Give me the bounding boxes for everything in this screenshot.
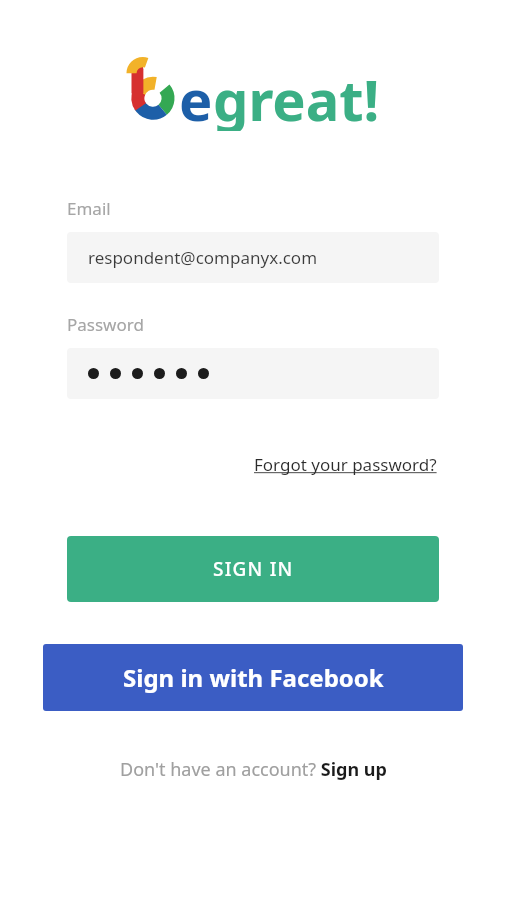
staticText: respondent@companyx.com bbox=[88, 246, 318, 269]
staticText: Don't have an account? Sign up bbox=[120, 757, 387, 782]
staticText: great! bbox=[213, 61, 380, 131]
button[interactable]: Sign in with Facebook bbox=[43, 644, 463, 711]
button[interactable]: respondent@companyx.com bbox=[67, 232, 439, 283]
staticText: SIGN IN bbox=[213, 556, 294, 582]
button[interactable]: Don't have an account? Sign up bbox=[114, 753, 393, 786]
other: begreat logo bbox=[127, 59, 177, 121]
staticText: Sign in with Facebook bbox=[123, 661, 384, 694]
staticText: e bbox=[179, 61, 213, 131]
staticText: Forgot your password? bbox=[254, 453, 437, 476]
staticText: Password bbox=[67, 313, 144, 336]
staticText: Email bbox=[67, 197, 111, 220]
button[interactable]: Forgot your password? bbox=[252, 449, 439, 480]
button[interactable]: SIGN IN bbox=[67, 536, 439, 602]
button[interactable] bbox=[67, 348, 439, 399]
